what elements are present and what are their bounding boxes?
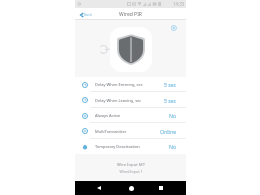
staticText: 5 sec xyxy=(164,97,177,104)
staticText: Online xyxy=(160,128,177,135)
staticText: Delay When Leaving, sec xyxy=(95,98,142,103)
button[interactable]: Home xyxy=(126,183,136,193)
button[interactable]: MultiTransmitter xyxy=(75,123,186,139)
staticText: No xyxy=(169,112,177,119)
staticText: Wired PIR xyxy=(119,11,142,18)
staticText: No xyxy=(169,143,177,150)
staticText: 14:33 xyxy=(173,1,185,7)
button[interactable]: Help xyxy=(169,23,179,33)
button[interactable]: Back xyxy=(79,10,93,19)
staticText: 5 sec xyxy=(164,81,177,88)
staticText: Wire Input MT xyxy=(117,162,145,168)
staticText: Temporary Deactivation xyxy=(95,144,140,149)
button[interactable]: Always Active xyxy=(75,108,186,123)
button[interactable]: Recents xyxy=(156,183,166,193)
button[interactable]: Back xyxy=(94,183,104,193)
staticText: Delay When Entering, sec xyxy=(95,82,143,87)
staticText: Always Active xyxy=(95,113,121,118)
button[interactable]: Temporary Deactivation xyxy=(75,139,186,154)
staticText: MultiTransmitter xyxy=(95,129,127,134)
staticText: Wired Input 1 xyxy=(119,169,143,174)
button[interactable]: Delay When Entering, sec xyxy=(75,77,186,92)
staticText: Back xyxy=(84,12,92,17)
button[interactable]: Delay When Leaving, sec xyxy=(75,92,186,108)
